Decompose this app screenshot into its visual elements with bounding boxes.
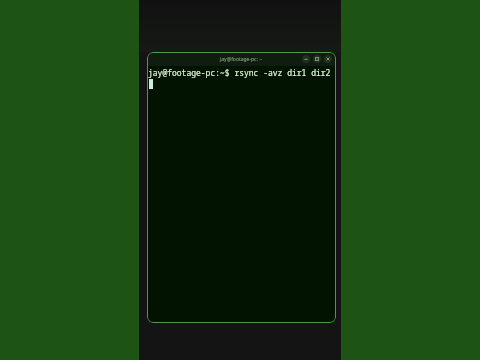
button[interactable]: Close: [324, 55, 332, 63]
button[interactable]: jay@footage-pc:~$ rsync -avz dir1 dir2: [147, 66, 336, 323]
staticText: jay@footage-pc:~$ rsync -avz dir1 dir2: [148, 67, 331, 78]
staticText: jay@footage-pc: ~: [220, 56, 263, 63]
button[interactable]: Maximize: [313, 55, 321, 63]
button[interactable]: Minimize: [302, 55, 310, 63]
button[interactable]: jay@footage-pc: ~: [147, 52, 336, 66]
